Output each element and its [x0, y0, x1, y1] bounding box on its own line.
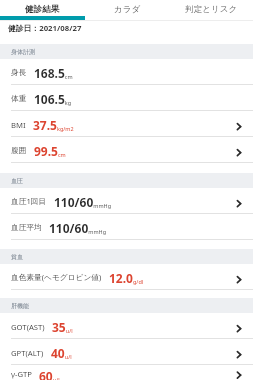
staticText: 腹囲	[11, 146, 27, 156]
button[interactable]: 血色素量(ヘモグロビン値)	[0, 264, 253, 290]
staticText: 血圧1回目	[11, 196, 47, 207]
button[interactable]: 体重	[0, 85, 253, 111]
staticText: γ-GTP	[11, 369, 32, 379]
staticText: 35u/l	[52, 319, 73, 335]
button[interactable]: 腹囲	[0, 137, 253, 163]
button[interactable]: 身長	[0, 59, 253, 85]
staticText: 99.5cm	[34, 143, 66, 159]
button[interactable]: 血圧平均	[0, 214, 253, 240]
staticText: 37.5kg/m2	[33, 117, 74, 133]
staticText: 身長	[11, 68, 27, 78]
button[interactable]: GOT(AST)	[0, 313, 253, 339]
button[interactable]: 判定とリスク	[169, 0, 253, 20]
staticText: GPT(ALT)	[11, 348, 44, 358]
staticText: 血圧平均	[11, 223, 42, 233]
staticText: 判定とリスク	[185, 4, 238, 15]
staticText: 60u/l	[39, 368, 60, 380]
staticText: 血色素量(ヘモグロビン値)	[11, 272, 102, 283]
staticText: 168.5cm	[34, 65, 73, 81]
staticText: 12.0g/dl	[109, 270, 144, 286]
button[interactable]: γ-GTP	[0, 365, 253, 380]
staticText: 身体計測	[11, 48, 35, 56]
staticText: 健診結果	[25, 4, 60, 15]
staticText: 貧血	[11, 253, 23, 261]
staticText: 健診日：2021/08/27	[8, 23, 82, 34]
staticText: 肝機能	[11, 302, 29, 310]
button[interactable]: BMI	[0, 111, 253, 137]
button[interactable]: カラダ	[85, 0, 169, 20]
staticText: 110/60mmHg	[54, 194, 112, 210]
staticText: 106.5kg	[34, 91, 72, 107]
staticText: カラダ	[114, 4, 141, 15]
staticText: 体重	[11, 94, 27, 104]
button[interactable]: GPT(ALT)	[0, 339, 253, 365]
staticText: 血圧	[11, 177, 23, 185]
staticText: 40u/l	[51, 345, 72, 361]
button[interactable]: 健診結果	[0, 0, 85, 20]
staticText: 110/60mmHg	[49, 220, 107, 236]
staticText: BMI	[11, 120, 26, 130]
staticText: GOT(AST)	[11, 322, 45, 332]
button[interactable]: 血圧1回目	[0, 188, 253, 214]
